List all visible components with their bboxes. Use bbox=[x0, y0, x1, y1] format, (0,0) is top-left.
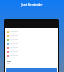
button[interactable] bbox=[5, 38, 58, 42]
button[interactable] bbox=[5, 46, 58, 50]
button[interactable] bbox=[5, 50, 58, 54]
staticText: Just Reminder bbox=[0, 3, 64, 7]
button[interactable] bbox=[5, 34, 58, 38]
button[interactable] bbox=[5, 42, 58, 46]
button[interactable] bbox=[5, 54, 58, 58]
button[interactable] bbox=[5, 30, 58, 34]
button[interactable] bbox=[5, 60, 58, 64]
